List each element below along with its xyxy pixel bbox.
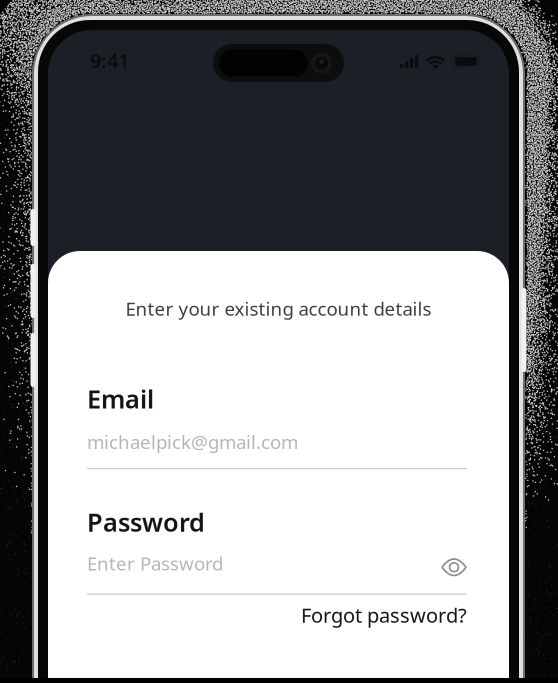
- staticText: Forgot password?: [301, 602, 467, 628]
- staticText: Email: [87, 382, 154, 415]
- staticText: 9:41: [90, 47, 129, 74]
- staticText: Password: [87, 505, 205, 539]
- button[interactable]: Show password: [441, 552, 467, 574]
- staticText: michaelpick@gmail.com: [87, 429, 298, 454]
- staticText: Enter Password: [87, 551, 223, 576]
- staticText: Enter your existing account details: [125, 296, 431, 321]
- button[interactable]: Forgot password?: [87, 595, 467, 628]
